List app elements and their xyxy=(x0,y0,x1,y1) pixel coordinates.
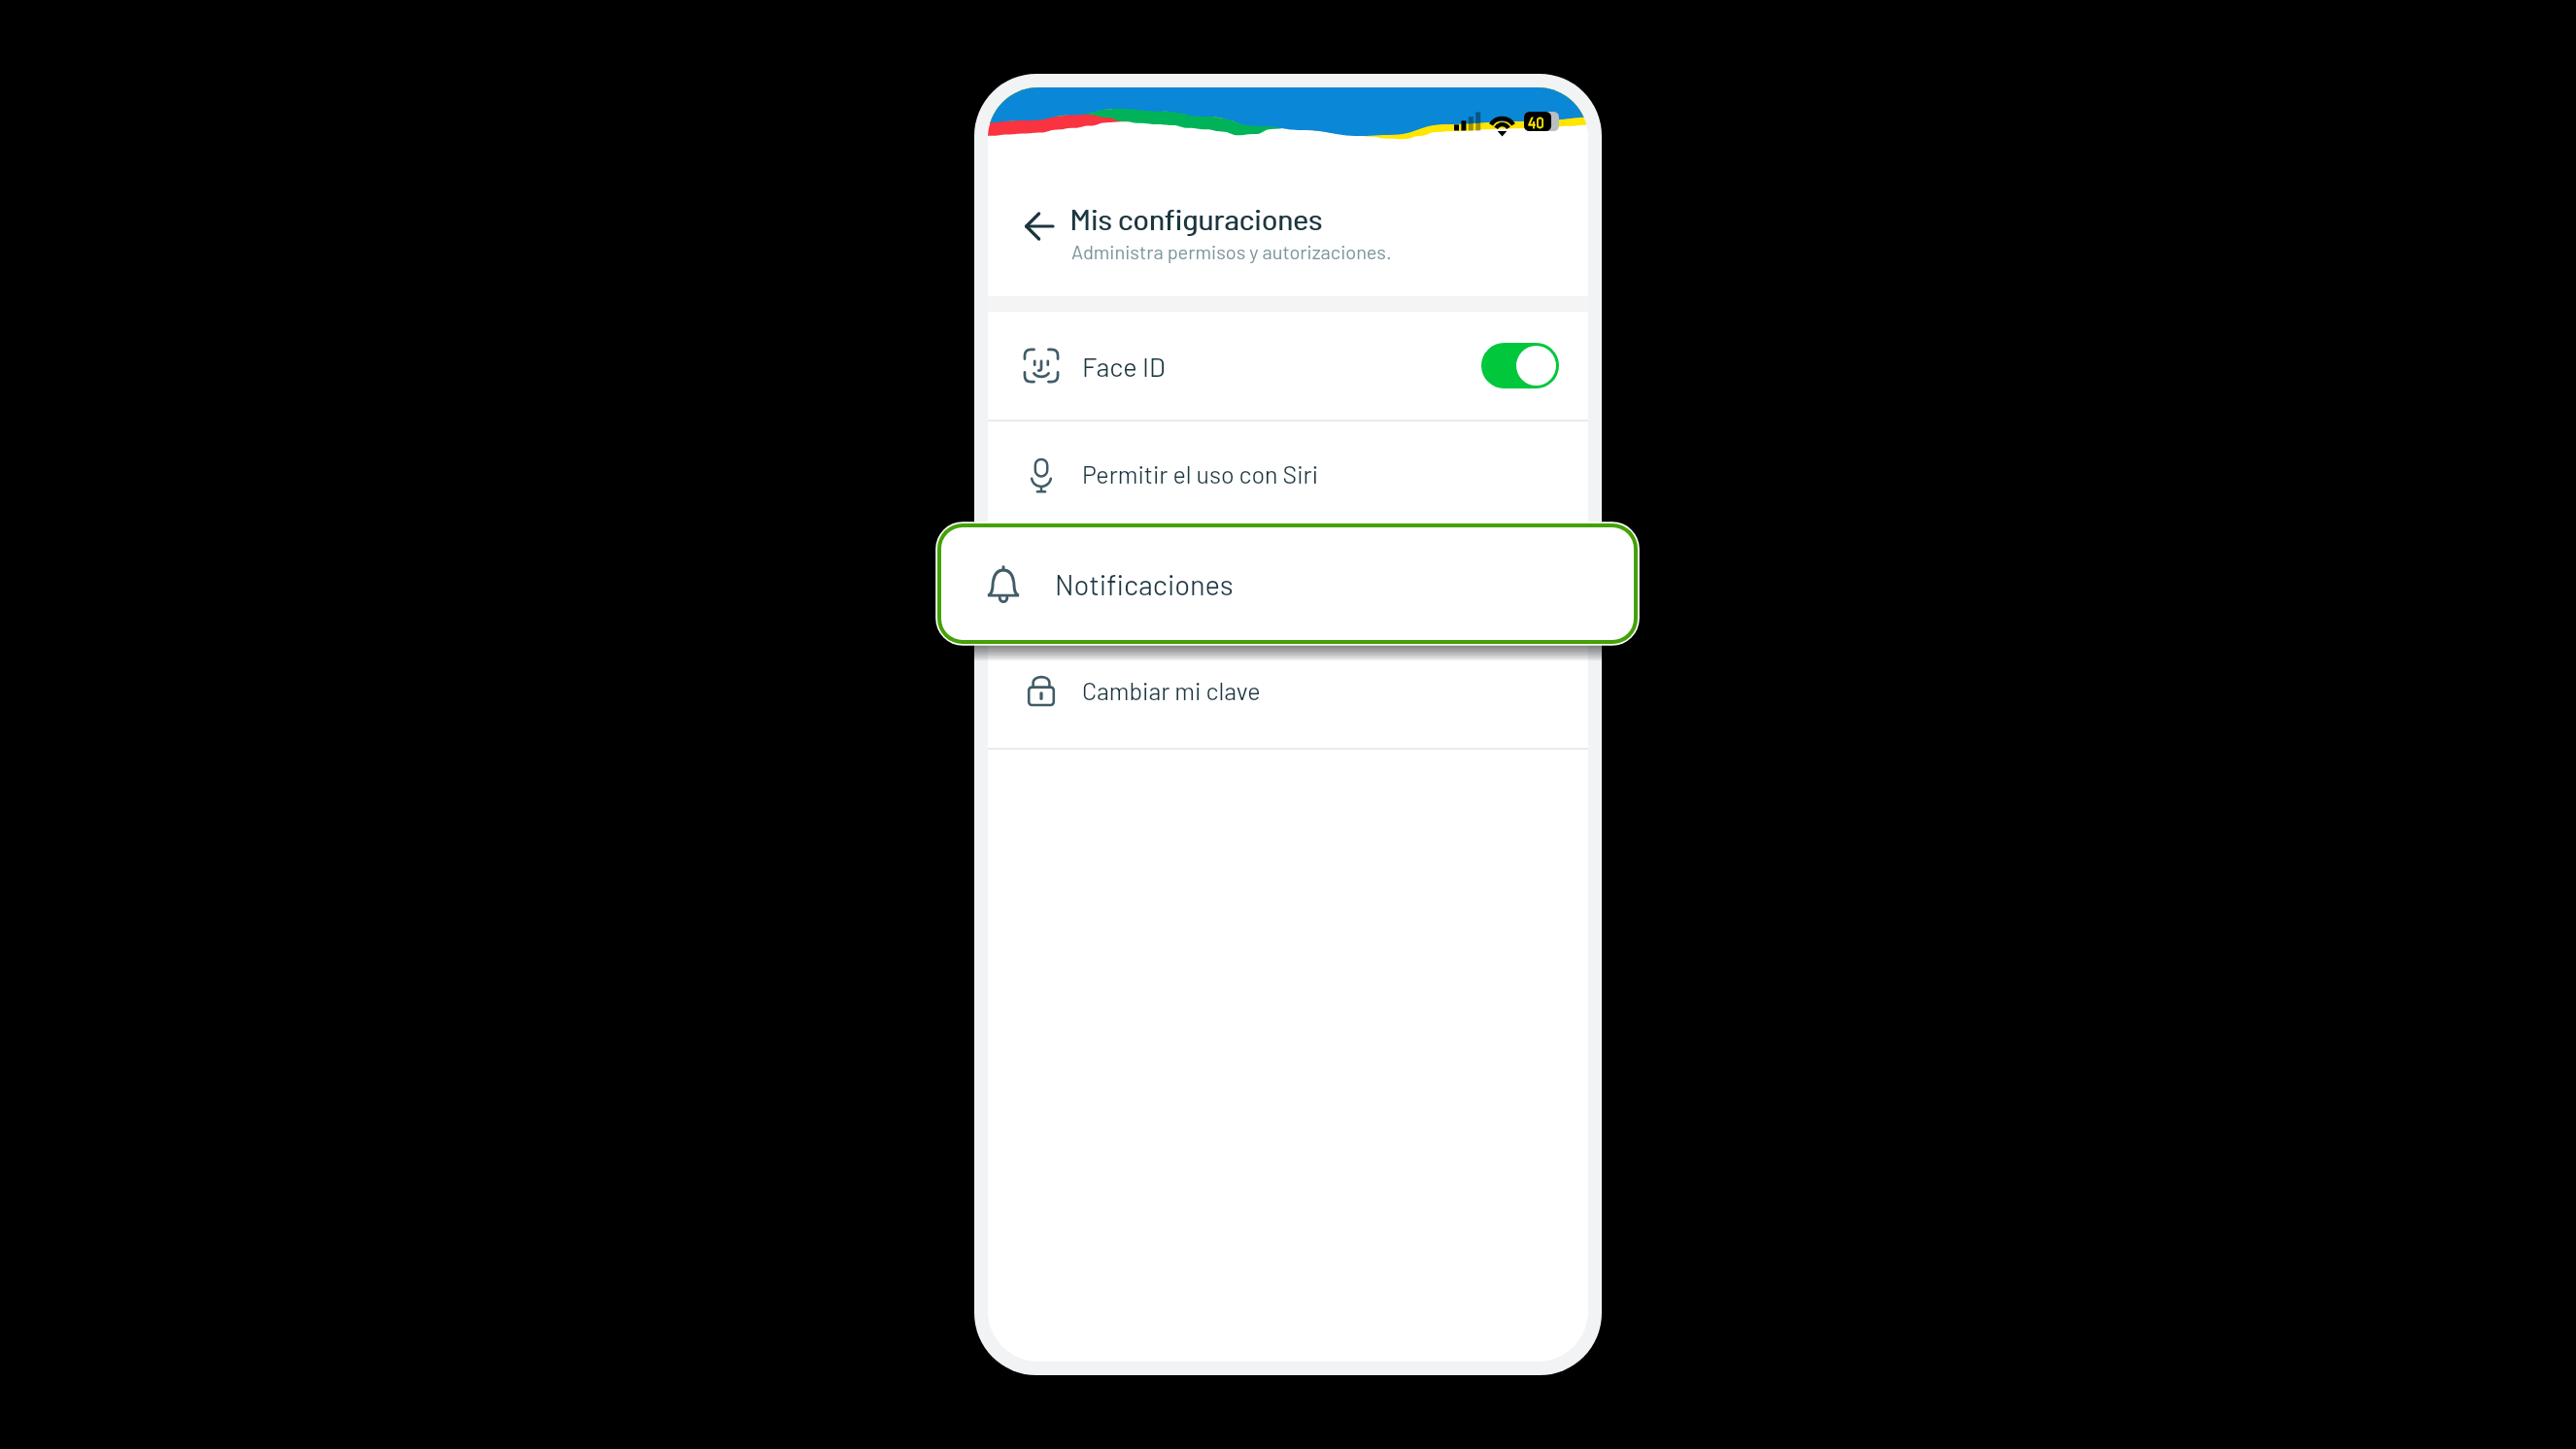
button[interactable]: Cambiar mi clave xyxy=(988,636,1588,745)
button[interactable]: Permitir el uso con Siri xyxy=(988,421,1588,527)
staticText: Cambiar mi clave xyxy=(1082,676,1261,705)
staticText: Mis configuraciones xyxy=(1069,201,1322,236)
button[interactable]: Face ID enabled xyxy=(1481,343,1559,388)
staticText: Notificaciones xyxy=(1055,567,1234,601)
staticText: Administra permisos y autorizaciones. xyxy=(1071,240,1392,263)
button[interactable]: Back xyxy=(1012,199,1067,253)
staticText: Face ID xyxy=(1082,351,1166,382)
staticText: 40 xyxy=(1528,114,1544,131)
staticText: Mis configuraciones xyxy=(1070,201,1323,236)
button[interactable]: Face ID xyxy=(988,312,1588,420)
staticText: Permitir el uso con Siri xyxy=(1082,459,1319,489)
button[interactable]: Notificaciones xyxy=(937,523,1638,644)
